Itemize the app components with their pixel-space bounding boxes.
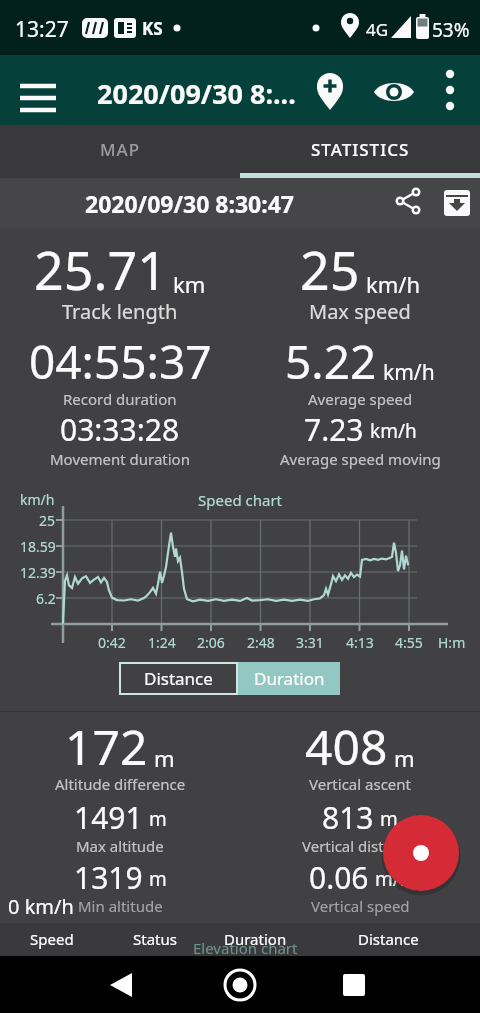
staticText: 4:13 (346, 633, 374, 652)
button[interactable]: MAP (0, 125, 240, 173)
staticText: 0 km/h (8, 893, 74, 920)
staticText: 12.39 (20, 563, 56, 582)
staticText: H:m (438, 633, 466, 652)
staticText: 2020/09/30 8:30:47 (85, 188, 295, 219)
staticText: 0:42 (98, 633, 126, 652)
staticText: MAP (100, 138, 141, 161)
staticText: Max altitude (76, 836, 164, 856)
staticText: km (173, 269, 206, 299)
staticText: 2020/09/30 8:... (97, 75, 296, 112)
staticText: Duration (224, 929, 287, 949)
staticText: m (154, 743, 175, 773)
button[interactable] (320, 956, 480, 1013)
staticText: m (380, 806, 398, 832)
staticText: 25.71 (34, 234, 167, 305)
staticText: 13:27 (15, 15, 69, 44)
staticText: 5.22 (285, 330, 377, 393)
staticText: 4G (366, 18, 389, 41)
staticText: Vertical speed (311, 896, 410, 916)
button[interactable] (370, 68, 418, 116)
staticText: 408 (305, 714, 388, 779)
button[interactable] (438, 183, 478, 223)
staticText: 4:55 (395, 633, 423, 652)
staticText: Track length (62, 298, 178, 325)
staticText: Min altitude (78, 896, 163, 916)
staticText: Altitude difference (55, 774, 186, 794)
button[interactable] (388, 183, 428, 223)
staticText: m/h (375, 866, 412, 892)
staticText: km/h (370, 418, 417, 444)
staticText: Average speed (308, 389, 413, 409)
staticText: Movement duration (50, 449, 190, 469)
staticText: km/h (366, 269, 421, 299)
staticText: 2:48 (247, 633, 275, 652)
staticText: Duration (254, 667, 325, 690)
staticText: 25 (39, 511, 56, 530)
staticText: Distance (358, 929, 419, 949)
button[interactable] (160, 956, 320, 1013)
staticText: Distance (144, 667, 213, 690)
staticText: Speed chart (198, 490, 283, 510)
staticText: Speed (30, 929, 74, 949)
staticText: 18.59 (20, 537, 56, 556)
staticText: 1491 (74, 797, 143, 838)
staticText: m (149, 866, 167, 892)
button[interactable]: Duration (238, 662, 340, 695)
staticText: 6.2 (36, 589, 56, 608)
staticText: Elevation chart (193, 938, 298, 958)
button[interactable] (306, 68, 354, 116)
button[interactable]: Distance (119, 662, 238, 695)
staticText: 0.06 (309, 857, 369, 898)
button[interactable] (0, 956, 160, 1013)
staticText: km/h (20, 490, 55, 509)
button[interactable] (428, 69, 472, 113)
staticText: Max speed (309, 298, 411, 325)
staticText: 2:06 (197, 633, 225, 652)
staticText: 813 (322, 797, 374, 838)
staticText: 03:33:28 (60, 409, 180, 450)
staticText: 7.23 (304, 409, 364, 450)
button[interactable] (383, 815, 459, 891)
staticText: STATISTICS (311, 138, 410, 161)
staticText: Average speed moving (280, 449, 441, 469)
staticText: 1:24 (148, 633, 176, 652)
staticText: Record duration (63, 389, 177, 409)
staticText: 04:55:37 (29, 330, 212, 393)
staticText: 25 (300, 234, 360, 305)
staticText: Vertical ascent (309, 774, 411, 794)
staticText: 172 (65, 714, 148, 779)
staticText: m (149, 806, 167, 832)
button[interactable]: STATISTICS (240, 125, 480, 173)
staticText: KS (142, 17, 163, 40)
staticText: 3:31 (296, 633, 324, 652)
staticText: Vertical distance (302, 836, 418, 856)
staticText: m (394, 743, 415, 773)
button[interactable] (8, 78, 56, 118)
staticText: 53% (432, 17, 470, 43)
staticText: Status (133, 929, 177, 949)
staticText: 1319 (74, 857, 143, 898)
staticText: km/h (383, 358, 435, 387)
